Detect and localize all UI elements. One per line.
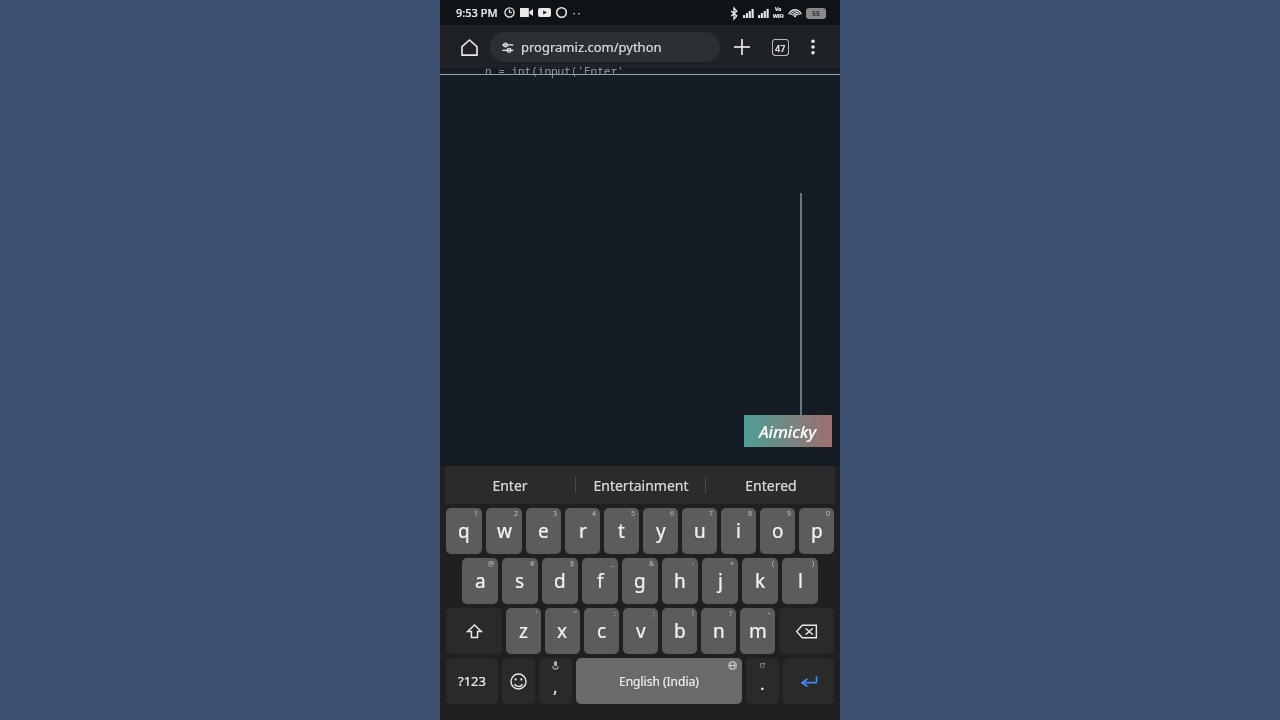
staticText: ' (536, 609, 538, 619)
button[interactable]: Backspace (779, 608, 834, 654)
button[interactable]: @ (462, 558, 498, 604)
button[interactable]: 6 (643, 508, 678, 554)
staticText: p (811, 518, 823, 544)
button[interactable]: - (662, 558, 698, 604)
staticText: ?123 (458, 672, 486, 690)
staticText: d (554, 568, 566, 594)
button[interactable]: English (India) (576, 658, 742, 704)
button[interactable]: 4 (565, 508, 600, 554)
staticText: !? (760, 661, 765, 671)
staticText: ! (692, 609, 694, 619)
staticText: 1 (474, 509, 479, 519)
button[interactable]: More options (798, 32, 828, 62)
button[interactable]: ~ (740, 608, 775, 654)
staticText: , (553, 675, 558, 698)
staticText: _ (611, 559, 615, 569)
staticText: Aimicky (759, 420, 817, 443)
staticText: ~ (767, 609, 772, 619)
button[interactable]: $ (542, 558, 578, 604)
staticText: ) (812, 559, 815, 569)
staticText: t (618, 518, 625, 544)
button[interactable]: 9 (760, 508, 795, 554)
staticText: k (755, 568, 766, 594)
staticText: q (458, 518, 470, 544)
staticText: 6 (670, 509, 675, 519)
button[interactable]: Shift (446, 608, 502, 654)
staticText: @ (488, 559, 495, 569)
staticText: " (574, 609, 577, 619)
button[interactable]: Enter (783, 658, 834, 704)
button[interactable]: ' (506, 608, 541, 654)
button[interactable]: 0 (799, 508, 834, 554)
staticText: Vo (775, 6, 782, 13)
staticText: 2 (514, 509, 519, 519)
button[interactable]: Tabs: 47 (764, 31, 796, 63)
button[interactable]: 1 (446, 508, 482, 554)
button[interactable]: # (502, 558, 538, 604)
staticText: m (749, 618, 767, 644)
staticText: 9 (787, 509, 792, 519)
staticText: · · (573, 7, 581, 19)
staticText: 4 (592, 509, 597, 519)
button[interactable]: : (584, 608, 619, 654)
staticText: f (597, 568, 604, 594)
button[interactable]: _ (582, 558, 618, 604)
button[interactable]: ; (623, 608, 658, 654)
button[interactable]: ! (662, 608, 697, 654)
staticText: 47 (775, 42, 786, 54)
button[interactable]: 3 (526, 508, 561, 554)
staticText: ; (653, 609, 655, 619)
staticText: - (692, 559, 695, 569)
staticText: 55 (812, 9, 821, 19)
staticText: o (772, 518, 784, 544)
staticText: b (674, 618, 686, 644)
staticText: s (515, 568, 525, 594)
button[interactable]: Emoji (502, 658, 535, 704)
staticText: ? (729, 609, 733, 619)
button[interactable]: ?123 (446, 658, 498, 704)
staticText: & (649, 559, 655, 569)
staticText: # (530, 559, 535, 569)
staticText: a (475, 568, 486, 594)
staticText: i (736, 518, 741, 544)
button[interactable]: programiz.com/python (490, 32, 720, 62)
staticText: c (597, 618, 607, 644)
button[interactable]: New tab (726, 31, 758, 63)
staticText: z (519, 618, 528, 644)
button[interactable]: ( (742, 558, 778, 604)
staticText: programiz.com/python (521, 38, 662, 56)
staticText: : (614, 609, 616, 619)
button[interactable]: 2 (486, 508, 522, 554)
staticText: WiFi (773, 13, 784, 20)
button[interactable]: 5 (604, 508, 639, 554)
staticText: x (557, 618, 568, 644)
button[interactable]: + (702, 558, 738, 604)
staticText: Entertainment (593, 476, 689, 495)
button[interactable]: , (539, 658, 572, 704)
button[interactable]: Entered (706, 466, 835, 504)
staticText: 8 (748, 509, 753, 519)
staticText: + (730, 559, 735, 569)
button[interactable]: 7 (682, 508, 717, 554)
button[interactable]: & (622, 558, 658, 604)
staticText: ( (772, 559, 775, 569)
button[interactable]: Entertainment (576, 466, 705, 504)
button[interactable]: 8 (721, 508, 756, 554)
staticText: e (538, 518, 549, 544)
staticText: h (674, 568, 686, 594)
staticText: n (713, 618, 725, 644)
button[interactable]: Home (452, 30, 486, 64)
staticText: w (497, 518, 512, 544)
button[interactable]: Enter (445, 466, 575, 504)
staticText: 5 (631, 509, 636, 519)
staticText: Enter (492, 476, 528, 495)
staticText: . (760, 672, 765, 695)
staticText: l (798, 568, 803, 594)
button[interactable]: ? (701, 608, 736, 654)
staticText: $ (570, 559, 575, 569)
button[interactable]: " (545, 608, 580, 654)
staticText: j (718, 568, 723, 594)
button[interactable]: !? (746, 658, 779, 704)
button[interactable]: ) (782, 558, 818, 604)
staticText: Entered (745, 476, 797, 495)
